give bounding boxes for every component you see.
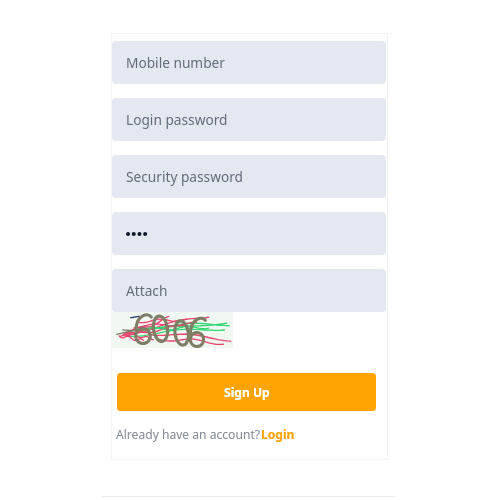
staticText: Mobile number (126, 53, 225, 72)
staticText: Sign Up (224, 384, 270, 400)
button[interactable]: Attach (112, 269, 386, 312)
button[interactable]: Mobile number (112, 41, 386, 84)
staticText: Security password (126, 167, 243, 186)
staticText: Attach (126, 281, 168, 300)
button[interactable]: Login password (112, 98, 386, 141)
button[interactable]: Sign Up (117, 373, 376, 411)
button[interactable]: Captcha image, tap to refresh (112, 312, 233, 348)
button[interactable]: Security password (112, 155, 386, 198)
staticText: Already have an account? (116, 426, 261, 442)
button[interactable] (112, 212, 386, 255)
staticText: Login (261, 426, 295, 442)
staticText: Login password (126, 110, 228, 129)
button[interactable]: Login (261, 426, 295, 442)
